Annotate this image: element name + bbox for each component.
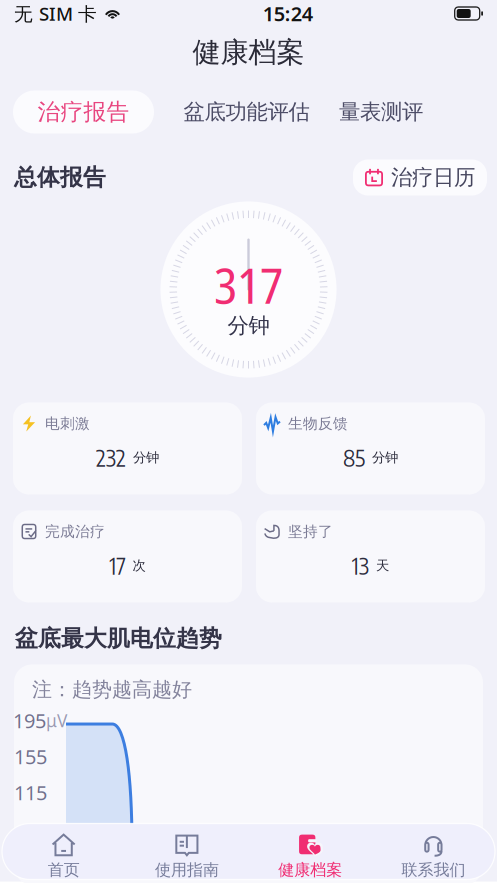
staticText: 首页: [48, 860, 80, 880]
staticText: 电刺激: [45, 414, 90, 432]
staticText: 次: [132, 557, 145, 574]
button[interactable]: 治疗日历: [353, 159, 487, 195]
staticText: 量表测评: [339, 99, 423, 125]
staticText: 坚持了: [288, 522, 333, 540]
button[interactable]: 量表测评: [339, 90, 423, 133]
staticText: 健康档案: [278, 860, 342, 880]
staticText: 治疗报告: [37, 98, 129, 126]
staticText: 13: [352, 551, 369, 580]
staticText: 健康档案: [192, 35, 304, 70]
staticText: 232: [96, 443, 126, 472]
staticText: 17: [109, 551, 125, 580]
staticText: 注：趋势越高越好: [32, 677, 192, 702]
staticText: 分钟: [372, 449, 398, 466]
staticText: 195: [13, 707, 46, 734]
staticText: 85: [343, 443, 365, 472]
button[interactable]: 盆底功能评估: [183, 90, 309, 133]
staticText: 分钟: [227, 312, 269, 339]
staticText: 使用指南: [155, 860, 219, 880]
button[interactable]: 联系我们: [372, 823, 495, 879]
staticText: 联系我们: [401, 860, 465, 880]
button[interactable]: 健康档案: [248, 823, 372, 879]
staticText: 盆底最大肌电位趋势: [15, 625, 222, 652]
staticText: 155: [14, 743, 47, 770]
staticText: 天: [376, 557, 389, 574]
staticText: μV: [46, 709, 67, 732]
button[interactable]: 首页: [2, 823, 125, 879]
staticText: 15:24: [263, 0, 313, 27]
staticText: 无 SIM 卡: [14, 1, 97, 26]
staticText: 生物反馈: [288, 414, 348, 432]
button[interactable]: 使用指南: [125, 823, 248, 879]
staticText: 115: [14, 779, 47, 806]
staticText: 治疗日历: [391, 164, 475, 191]
staticText: 317: [214, 251, 283, 318]
staticText: 总体报告: [14, 164, 106, 191]
staticText: 盆底功能评估: [183, 99, 309, 125]
staticText: 完成治疗: [45, 522, 105, 540]
staticText: 分钟: [133, 449, 159, 466]
button[interactable]: 治疗报告: [13, 90, 154, 133]
